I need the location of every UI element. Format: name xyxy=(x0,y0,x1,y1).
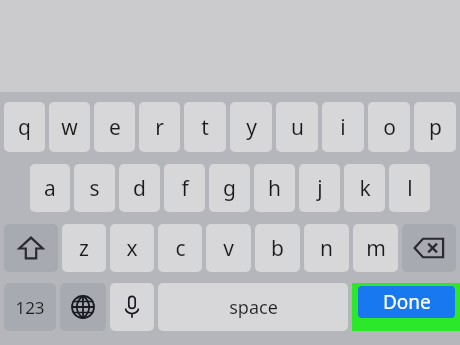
staticText: t xyxy=(201,113,209,142)
button[interactable]: g xyxy=(209,164,250,212)
button[interactable]: l xyxy=(389,164,430,212)
button[interactable]: n xyxy=(304,224,349,272)
staticText: c xyxy=(175,234,186,263)
button[interactable]: k xyxy=(344,164,385,212)
staticText: u xyxy=(291,113,304,142)
button[interactable]: z xyxy=(62,224,106,272)
button[interactable]: f xyxy=(164,164,205,212)
button[interactable]: Delete xyxy=(402,224,456,272)
staticText: g xyxy=(223,174,236,203)
staticText: m xyxy=(366,234,386,263)
button[interactable]: space xyxy=(158,283,348,331)
button[interactable]: o xyxy=(368,102,410,152)
staticText: Done xyxy=(383,289,431,315)
staticText: j xyxy=(317,174,323,203)
staticText: e xyxy=(109,113,121,142)
staticText: n xyxy=(320,234,333,263)
staticText: o xyxy=(383,113,396,142)
button[interactable]: Shift xyxy=(4,224,58,272)
button[interactable]: a xyxy=(30,164,70,212)
button[interactable]: u xyxy=(276,102,318,152)
staticText: space xyxy=(229,295,278,320)
button[interactable]: b xyxy=(255,224,300,272)
button[interactable]: Change keyboard xyxy=(60,283,106,331)
button[interactable]: v xyxy=(206,224,251,272)
staticText: i xyxy=(340,113,346,142)
staticText: s xyxy=(89,174,100,203)
button[interactable]: c xyxy=(158,224,202,272)
staticText: 123 xyxy=(15,296,45,319)
button[interactable]: q xyxy=(4,102,45,152)
staticText: a xyxy=(44,174,56,203)
button[interactable]: e xyxy=(94,102,135,152)
button[interactable]: Dictate xyxy=(110,283,154,331)
button[interactable]: r xyxy=(139,102,180,152)
button[interactable]: t xyxy=(184,102,226,152)
staticText: y xyxy=(246,113,257,142)
button[interactable]: i xyxy=(322,102,364,152)
staticText: v xyxy=(223,234,234,263)
staticText: r xyxy=(155,113,164,142)
staticText: k xyxy=(359,174,371,203)
button[interactable]: h xyxy=(254,164,295,212)
button[interactable]: m xyxy=(353,224,398,272)
button[interactable]: y xyxy=(230,102,272,152)
button[interactable]: p xyxy=(414,102,456,152)
staticText: x xyxy=(126,234,138,263)
staticText: l xyxy=(407,174,413,203)
staticText: d xyxy=(133,174,146,203)
staticText: q xyxy=(18,113,31,142)
staticText: w xyxy=(61,113,78,142)
button[interactable]: w xyxy=(49,102,90,152)
staticText: f xyxy=(181,174,189,203)
button[interactable]: 123 xyxy=(4,283,56,331)
staticText: p xyxy=(429,113,442,142)
button[interactable]: s xyxy=(74,164,115,212)
button[interactable]: d xyxy=(119,164,160,212)
button[interactable]: Done xyxy=(358,286,455,318)
staticText: b xyxy=(271,234,284,263)
button[interactable]: j xyxy=(299,164,340,212)
staticText: z xyxy=(79,234,89,263)
staticText: h xyxy=(268,174,281,203)
button[interactable]: x xyxy=(110,224,154,272)
